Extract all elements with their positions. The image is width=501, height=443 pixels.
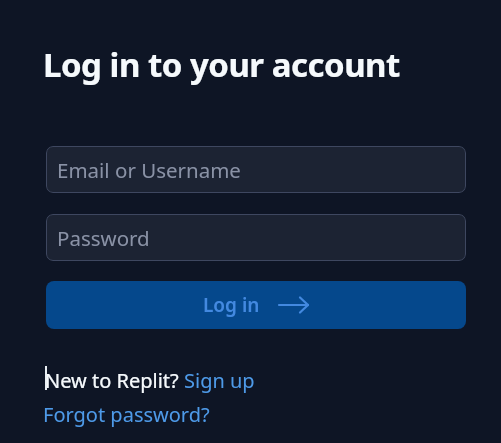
staticText: New to Replit? — [45, 367, 184, 394]
staticText: Log in — [203, 292, 260, 318]
staticText: Password — [57, 224, 150, 252]
button[interactable]: Log in — [46, 281, 466, 329]
button[interactable]: Forgot password? — [43, 401, 210, 428]
staticText: Log in to your account — [43, 42, 400, 87]
button[interactable]: Password — [46, 214, 466, 261]
button[interactable]: Sign up — [184, 367, 255, 394]
button[interactable]: Email or Username — [46, 146, 466, 193]
staticText: Email or Username — [57, 156, 241, 184]
